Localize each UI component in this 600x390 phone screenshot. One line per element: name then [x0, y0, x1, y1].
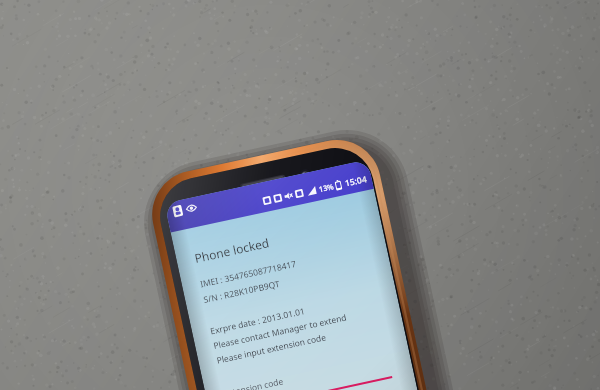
staticText: S/N : R28K10PB9QT: [202, 278, 281, 306]
staticText: Please input extension code: [215, 330, 333, 367]
staticText: 13%: [318, 181, 335, 194]
staticText: Phone locked: [193, 234, 271, 266]
staticText: IMEI : 354765087718417: [199, 258, 297, 290]
staticText: Exrpre date : 2013.01.01: [209, 305, 306, 337]
staticText: Extension code: [223, 375, 285, 390]
button[interactable]: Extension code: [223, 350, 407, 390]
staticText: Please contact Manager to extend: [212, 311, 348, 352]
staticText: 15:04: [344, 173, 368, 189]
